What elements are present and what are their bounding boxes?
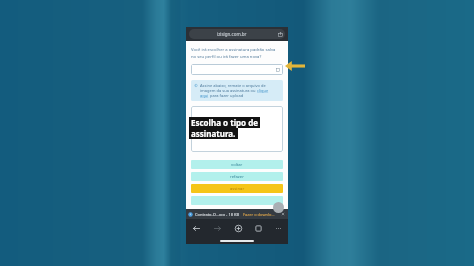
- staticText: assinatura.: [191, 128, 236, 139]
- staticText: Você irá escolher a assinatura padrão sa…: [191, 47, 276, 59]
- button[interactable]: [191, 64, 283, 75]
- button[interactable]: izisign.com.br: [189, 29, 285, 39]
- staticText: assinar: [230, 186, 245, 192]
- staticText: Escolha o tipo de: [191, 117, 258, 128]
- button[interactable]: refazer: [191, 172, 283, 181]
- button[interactable]: assinar: [191, 184, 283, 193]
- button[interactable]: [191, 196, 283, 205]
- staticText: para fazer upload: [209, 93, 244, 98]
- staticText: Assine abaixo, remate o arquivo de: [200, 83, 266, 88]
- staticText: Contrato-O...xcx - 18 KB: [195, 212, 240, 217]
- button[interactable]: Nova aba: [228, 219, 248, 237]
- button[interactable]: Voltar: [186, 219, 207, 237]
- button[interactable]: clique: [257, 88, 269, 93]
- button[interactable]: aqui: [200, 93, 209, 98]
- button[interactable]: Avançar: [207, 219, 228, 237]
- staticText: izisign.com.br: [217, 31, 247, 37]
- button[interactable]: Fazer o downlo...: [243, 212, 275, 217]
- staticText: refazer: [230, 174, 244, 180]
- staticText: voltar: [231, 162, 243, 168]
- staticText: imagem da sua assinatura ou: [200, 88, 257, 93]
- button[interactable]: Ação: [273, 202, 284, 213]
- button[interactable]: voltar: [191, 160, 283, 169]
- button[interactable]: Fechar: [279, 210, 287, 218]
- button[interactable]: Contrato-O...xcx - 18 KB: [186, 209, 288, 219]
- button[interactable]: [191, 106, 283, 152]
- button[interactable]: Mais opções: [268, 219, 288, 237]
- button[interactable]: Share: [275, 29, 285, 39]
- button[interactable]: Abas: [248, 219, 268, 237]
